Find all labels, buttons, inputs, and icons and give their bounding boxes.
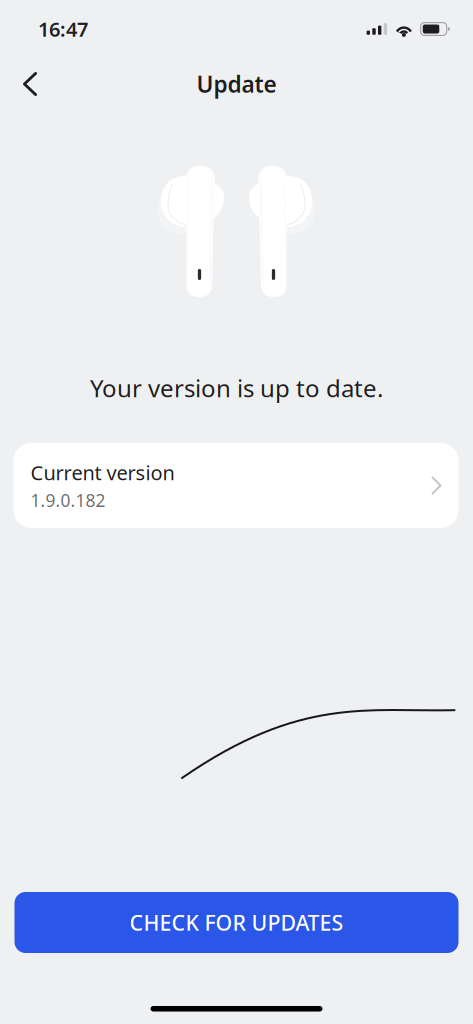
button[interactable]: Current version bbox=[13, 443, 458, 528]
staticText: 1.9.0.182 bbox=[30, 489, 105, 512]
staticText: CHECK FOR UPDATES bbox=[129, 908, 343, 937]
staticText: Current version bbox=[30, 459, 174, 486]
staticText: 16:47 bbox=[38, 16, 88, 42]
staticText: Your version is up to date. bbox=[90, 372, 383, 404]
staticText: Update bbox=[196, 69, 276, 99]
button[interactable]: CHECK FOR UPDATES bbox=[14, 892, 458, 953]
button[interactable]: Back bbox=[7, 61, 53, 107]
